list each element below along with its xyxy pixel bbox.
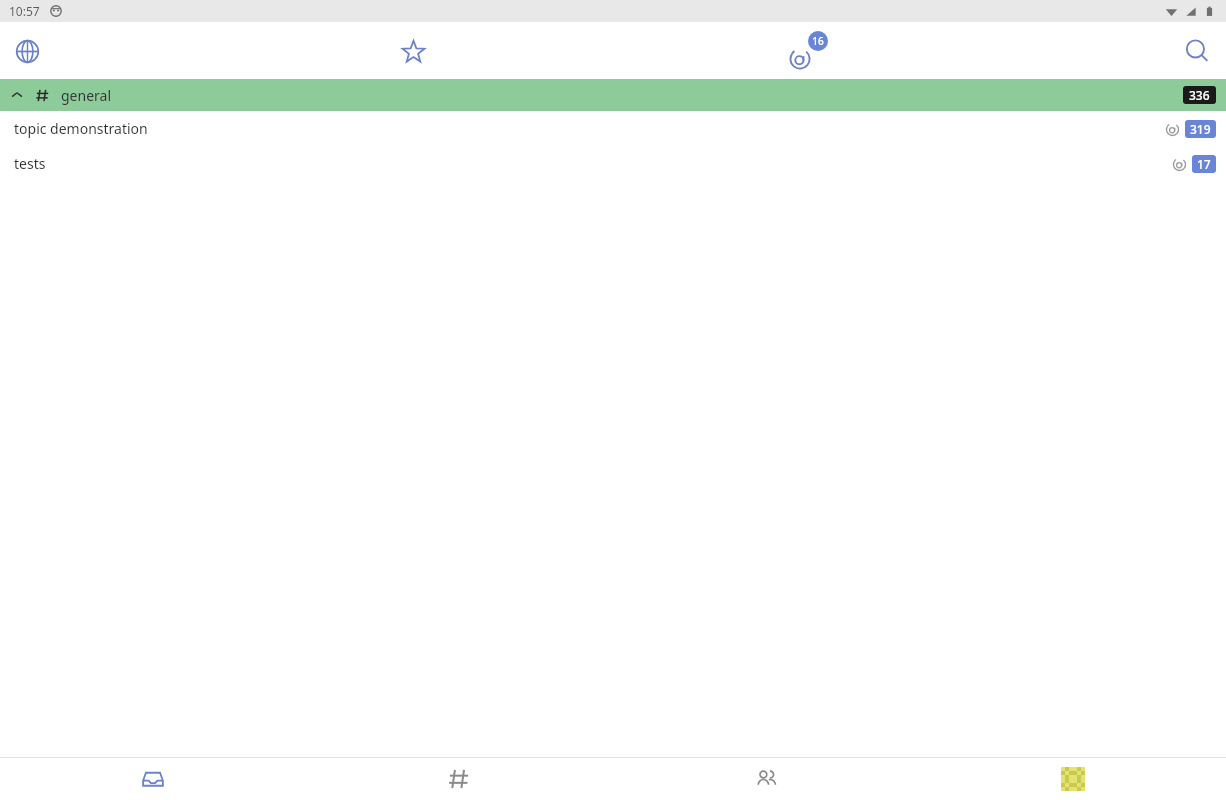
- staticText: topic demonstration: [14, 119, 148, 138]
- button[interactable]: general: [0, 79, 1226, 111]
- button[interactable]: tests: [0, 146, 1226, 181]
- button[interactable]: Search: [1175, 29, 1219, 73]
- button[interactable]: Inbox: [0, 758, 306, 800]
- button[interactable]: Profile: [919, 758, 1226, 800]
- staticText: 16: [812, 34, 824, 48]
- staticText: general: [61, 86, 112, 105]
- staticText: 319: [1190, 121, 1211, 137]
- button[interactable]: Mentions, 16 unread: [786, 29, 830, 73]
- button[interactable]: All messages: [7, 31, 47, 71]
- button[interactable]: Streams: [306, 758, 612, 800]
- staticText: tests: [14, 154, 46, 173]
- button[interactable]: topic demonstration: [0, 111, 1226, 146]
- staticText: 17: [1197, 156, 1211, 172]
- button[interactable]: Starred messages: [393, 31, 433, 71]
- staticText: 10:57: [9, 3, 40, 19]
- button[interactable]: People: [612, 758, 919, 800]
- staticText: 336: [1189, 87, 1210, 103]
